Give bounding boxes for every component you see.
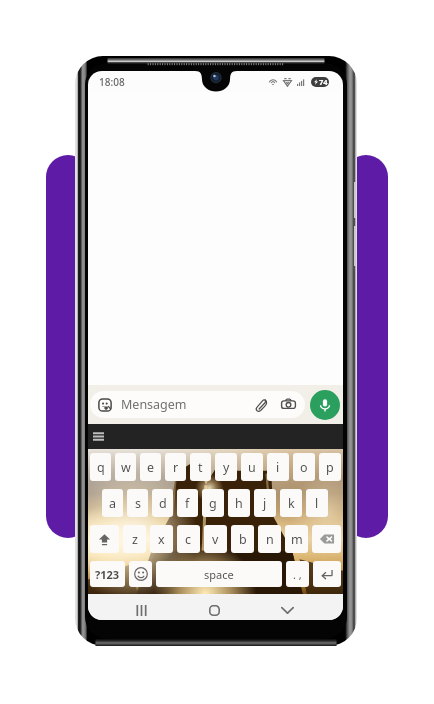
staticText: e: [147, 459, 155, 476]
button[interactable]: r: [165, 453, 186, 481]
button[interactable]: Shift: [90, 525, 119, 553]
button[interactable]: y: [215, 453, 237, 481]
button[interactable]: k: [280, 489, 302, 517]
staticText: t: [198, 459, 203, 476]
button[interactable]: Voice message: [310, 390, 340, 420]
button[interactable]: g: [202, 489, 224, 517]
staticText: x: [158, 531, 165, 548]
button[interactable]: Enter: [313, 561, 341, 587]
button[interactable]: o: [293, 453, 315, 481]
button[interactable]: c: [177, 525, 200, 553]
button[interactable]: f: [177, 489, 198, 517]
staticText: w: [121, 459, 131, 476]
staticText: m: [291, 531, 303, 548]
button[interactable]: j: [254, 489, 276, 517]
button[interactable]: q: [90, 453, 111, 481]
staticText: space: [204, 567, 234, 582]
button[interactable]: s: [127, 489, 148, 517]
button[interactable]: x: [150, 525, 173, 553]
button[interactable]: Back: [267, 600, 307, 620]
button[interactable]: Home: [194, 600, 234, 620]
button[interactable]: Emoji keyboard: [129, 561, 152, 587]
staticText: z: [132, 531, 138, 548]
button[interactable]: v: [204, 525, 227, 553]
staticText: Mensagem: [121, 396, 187, 413]
other: Stickers: [98, 398, 112, 412]
staticText: b: [239, 531, 247, 548]
button[interactable]: d: [152, 489, 173, 517]
other: Attach: [254, 397, 269, 412]
other: Keyboard menu: [93, 432, 104, 441]
button[interactable]: ?123: [90, 561, 125, 587]
button[interactable]: h: [228, 489, 250, 517]
staticText: o: [300, 459, 308, 476]
staticText: q: [97, 459, 105, 476]
staticText: a: [109, 495, 117, 512]
button[interactable]: m: [285, 525, 308, 553]
staticText: . ,: [293, 567, 302, 582]
staticText: k: [288, 495, 295, 512]
staticText: g: [209, 495, 217, 512]
button[interactable]: b: [231, 525, 254, 553]
staticText: r: [173, 459, 179, 476]
staticText: 18:08: [99, 75, 125, 89]
button[interactable]: Backspace: [312, 525, 341, 553]
staticText: u: [248, 459, 256, 476]
button[interactable]: l: [306, 489, 328, 517]
button[interactable]: a: [102, 489, 123, 517]
button[interactable]: . ,: [286, 561, 309, 587]
staticText: 74: [319, 77, 328, 87]
staticText: f: [185, 495, 190, 512]
button[interactable]: w: [115, 453, 136, 481]
staticText: ?123: [95, 567, 120, 582]
button[interactable]: Stickers: [90, 391, 305, 418]
staticText: j: [263, 495, 267, 512]
staticText: y: [223, 459, 230, 476]
staticText: p: [326, 459, 334, 476]
button[interactable]: Recent apps: [121, 600, 161, 620]
staticText: d: [159, 495, 167, 512]
button[interactable]: i: [267, 453, 289, 481]
button[interactable]: n: [258, 525, 281, 553]
button[interactable]: p: [319, 453, 341, 481]
button[interactable]: space: [156, 561, 282, 587]
staticText: h: [235, 495, 243, 512]
staticText: l: [315, 495, 319, 512]
staticText: i: [276, 459, 280, 476]
staticText: v: [212, 531, 219, 548]
staticText: s: [135, 495, 141, 512]
button[interactable]: t: [190, 453, 211, 481]
staticText: n: [266, 531, 274, 548]
button[interactable]: z: [123, 525, 146, 553]
other: Camera: [281, 397, 296, 412]
staticText: c: [185, 531, 192, 548]
button[interactable]: u: [241, 453, 263, 481]
button[interactable]: e: [140, 453, 161, 481]
